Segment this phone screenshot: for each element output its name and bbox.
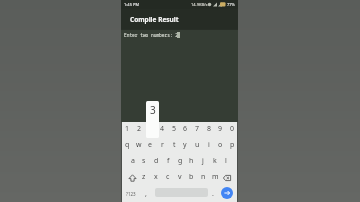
- button[interactable]: m: [208, 169, 222, 185]
- staticText: i: [208, 140, 210, 150]
- staticText: .: [212, 189, 214, 199]
- staticText: 77%: [227, 2, 235, 7]
- staticText: g: [178, 156, 183, 166]
- button[interactable]: w: [132, 137, 146, 153]
- staticText: 1: [125, 124, 130, 134]
- staticText: r: [161, 140, 164, 150]
- staticText: Compile Result: [130, 15, 179, 24]
- staticText: p: [230, 140, 235, 150]
- button[interactable]: u: [190, 137, 204, 153]
- staticText: n: [201, 172, 206, 182]
- button[interactable]: ?123: [124, 186, 138, 202]
- button[interactable]: r: [155, 137, 169, 153]
- staticText: u: [195, 140, 200, 150]
- staticText: y: [183, 140, 187, 150]
- staticText: 1:45 PM: [124, 2, 140, 7]
- staticText: 8: [207, 124, 212, 134]
- button[interactable]: .: [206, 186, 220, 202]
- button[interactable]: a: [126, 153, 140, 169]
- button[interactable]: e: [143, 137, 157, 153]
- staticText: v: [178, 172, 182, 182]
- staticText: 2: [137, 124, 142, 134]
- staticText: ,: [145, 189, 147, 199]
- staticText: m: [212, 172, 219, 182]
- staticText: c: [166, 172, 170, 182]
- staticText: e: [148, 140, 152, 150]
- staticText: h: [189, 156, 194, 166]
- button[interactable]: y: [178, 137, 192, 153]
- staticText: 5: [172, 124, 177, 134]
- button[interactable]: g: [173, 153, 187, 169]
- button[interactable]: t: [167, 137, 181, 153]
- button[interactable]: q: [120, 137, 134, 153]
- staticText: z: [142, 172, 146, 182]
- button[interactable]: d: [149, 153, 163, 169]
- button[interactable]: b: [184, 169, 198, 185]
- staticText: b: [189, 172, 194, 182]
- button[interactable]: n: [196, 169, 210, 185]
- staticText: 9: [218, 124, 223, 134]
- staticText: x: [154, 172, 158, 182]
- button[interactable]: f: [161, 153, 175, 169]
- button[interactable]: 6: [178, 121, 192, 137]
- staticText: 7: [195, 124, 200, 134]
- button[interactable]: 5: [167, 121, 181, 137]
- staticText: d: [154, 156, 159, 166]
- staticText: 6: [183, 124, 188, 134]
- staticText: a: [131, 156, 135, 166]
- staticText: t: [173, 140, 176, 150]
- staticText: 0: [230, 124, 235, 134]
- staticText: w: [136, 140, 142, 150]
- button[interactable]: c: [161, 169, 175, 185]
- button[interactable]: 4: [155, 121, 169, 137]
- staticText: o: [218, 140, 223, 150]
- button[interactable]: 2: [132, 121, 146, 137]
- staticText: 4: [160, 124, 165, 134]
- button[interactable]: 0: [225, 121, 239, 137]
- button[interactable]: [221, 187, 233, 199]
- button[interactable]: 8: [202, 121, 216, 137]
- button[interactable]: p: [225, 137, 239, 153]
- button[interactable]: x: [149, 169, 163, 185]
- button[interactable]: i: [202, 137, 216, 153]
- staticText: s: [142, 156, 146, 166]
- staticText: l: [225, 156, 227, 166]
- button[interactable]: Compile Result: [121, 9, 238, 29]
- button[interactable]: z: [137, 169, 151, 185]
- button[interactable]: k: [208, 153, 222, 169]
- staticText: Enter two numbers: 2: [124, 32, 178, 38]
- button[interactable]: j: [196, 153, 210, 169]
- button[interactable]: 1: [120, 121, 134, 137]
- button[interactable]: v: [173, 169, 187, 185]
- button[interactable]: h: [184, 153, 198, 169]
- staticText: j: [202, 156, 204, 166]
- button[interactable]: l: [219, 153, 233, 169]
- staticText: f: [167, 156, 170, 166]
- staticText: ?123: [126, 191, 136, 197]
- staticText: q: [125, 140, 130, 150]
- staticText: 3: [150, 103, 156, 117]
- button[interactable]: o: [213, 137, 227, 153]
- button[interactable]: 7: [190, 121, 204, 137]
- button[interactable]: 9: [213, 121, 227, 137]
- staticText: k: [213, 156, 217, 166]
- staticText: 14.9KB/s: [191, 2, 208, 7]
- button[interactable]: ,: [139, 186, 153, 202]
- button[interactable]: s: [137, 153, 151, 169]
